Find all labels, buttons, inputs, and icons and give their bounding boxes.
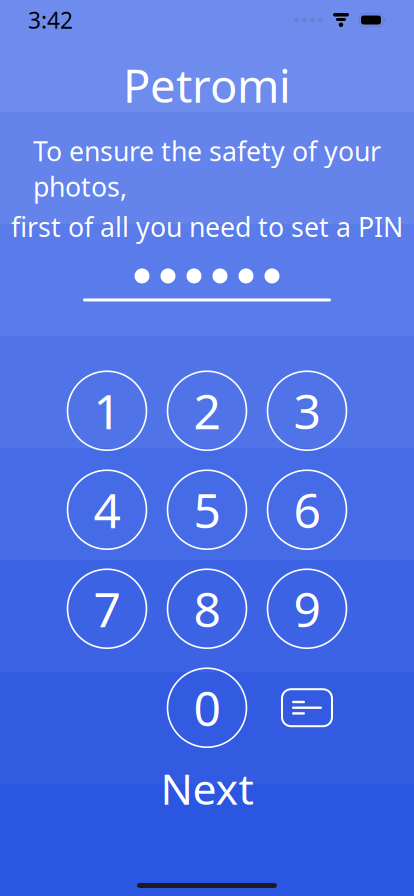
staticText: To ensure the safety of your photos,	[33, 133, 381, 204]
staticText: 7	[93, 577, 120, 640]
staticText: 4	[93, 478, 120, 541]
staticText: Next	[160, 760, 253, 817]
button[interactable]: 1	[67, 371, 146, 450]
button[interactable]: 8	[167, 569, 246, 648]
staticText: 5	[193, 478, 220, 541]
staticText: Petromi	[123, 55, 291, 115]
staticText: 3	[293, 379, 320, 442]
button[interactable]: 7	[67, 569, 146, 648]
staticText: 9	[293, 577, 320, 640]
staticText: 2	[193, 379, 220, 442]
button[interactable]: 9	[267, 569, 346, 648]
button[interactable]: 2	[167, 371, 246, 450]
staticText: 6	[293, 478, 320, 541]
staticText: 1	[93, 379, 120, 442]
button[interactable]: 6	[267, 470, 346, 549]
staticText: 8	[193, 577, 220, 640]
staticText: 0	[193, 676, 220, 739]
staticText: 3:42	[28, 5, 73, 35]
staticText: first of all you need to set a PIN	[11, 209, 403, 244]
button[interactable]: 4	[67, 470, 146, 549]
button[interactable]: Delete	[267, 668, 346, 747]
button[interactable]: 0	[167, 668, 246, 747]
button[interactable]: Next	[107, 763, 307, 813]
button[interactable]: 5	[167, 470, 246, 549]
button[interactable]: 3	[267, 371, 346, 450]
